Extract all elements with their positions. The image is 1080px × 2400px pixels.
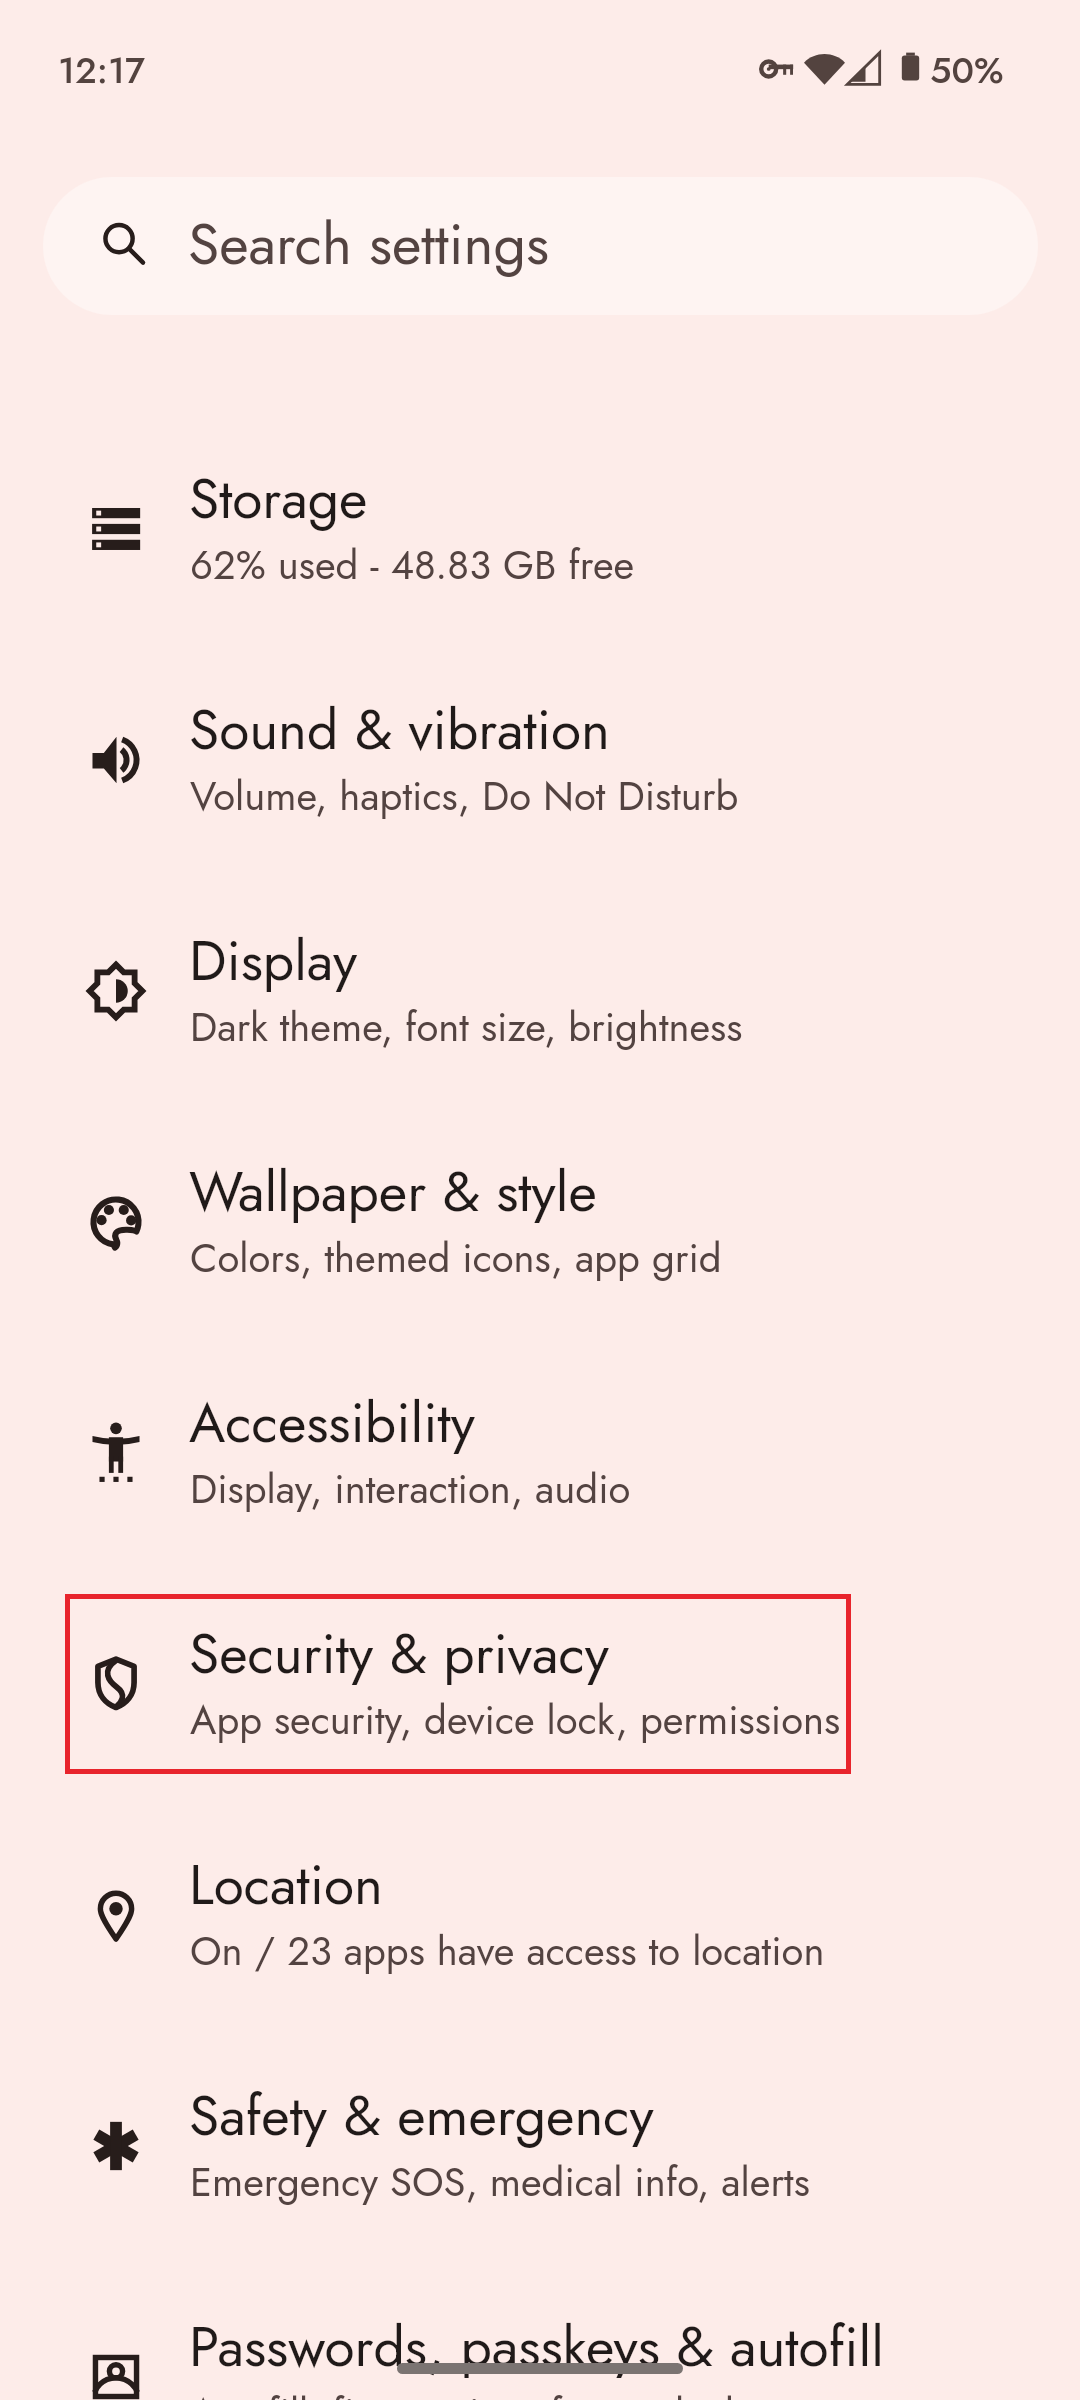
staticText: Sound & vibration (189, 690, 610, 769)
staticText: App security, device lock, permissions (190, 1691, 841, 1749)
staticText: Wallpaper & style (189, 1152, 597, 1231)
staticText: On / 23 apps have access to location (190, 1922, 825, 1980)
button[interactable]: Safety & emergency (0, 2019, 1080, 2250)
staticText: Location (189, 1845, 383, 1924)
staticText: 50% (930, 44, 1004, 96)
button[interactable]: Location (0, 1788, 1080, 2019)
button[interactable]: Accessibility (0, 1326, 1080, 1557)
button[interactable]: Security & privacy (0, 1557, 1080, 1788)
staticText: Volume, haptics, Do Not Disturb (190, 767, 739, 825)
staticText: 62% used - 48.83 GB free (190, 536, 635, 594)
staticText: Display, interaction, audio (190, 1460, 631, 1518)
button[interactable]: Sound & vibration (0, 633, 1080, 864)
button[interactable]: Display (0, 864, 1080, 1095)
button[interactable]: Storage (0, 402, 1080, 633)
staticText: Autofill, fingerprints, face unlock (190, 2384, 743, 2400)
staticText: Storage (189, 459, 368, 538)
staticText: Display (189, 921, 358, 1000)
staticText: 12:17 (58, 44, 146, 96)
staticText: Accessibility (189, 1383, 475, 1462)
staticText: Colors, themed icons, app grid (190, 1229, 722, 1287)
staticText: Passwords, passkeys & autofill (189, 2307, 884, 2386)
other: Search (98, 218, 149, 269)
button[interactable]: Wallpaper & style (0, 1095, 1080, 1326)
staticText: Safety & emergency (189, 2076, 654, 2155)
button[interactable]: Search (43, 177, 1038, 315)
button[interactable]: Passwords, passkeys & autofill (0, 2250, 1080, 2400)
staticText: Emergency SOS, medical info, alerts (190, 2153, 810, 2211)
staticText: Search settings (188, 203, 549, 285)
staticText: Security & privacy (189, 1614, 609, 1693)
staticText: Dark theme, font size, brightness (190, 998, 743, 1056)
